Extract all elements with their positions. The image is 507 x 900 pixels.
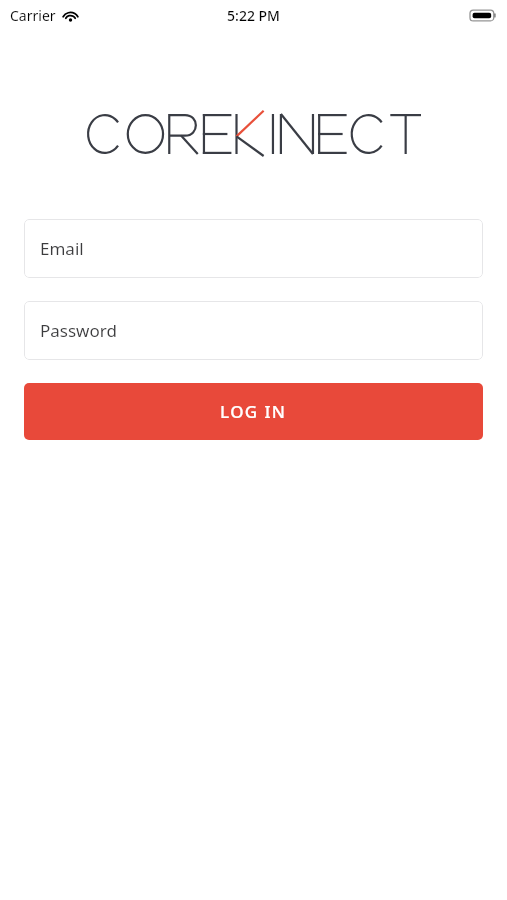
staticText: Password [40,319,117,342]
staticText: LOG IN [220,400,287,423]
other: Battery full [470,9,497,22]
staticText: 5:22 PM [227,6,280,25]
button[interactable]: Password [24,301,483,360]
staticText: Email [40,237,84,260]
staticText: Carrier [10,6,56,25]
button[interactable]: LOG IN [24,383,483,440]
other: Wi-Fi signal [62,9,79,22]
button[interactable]: Email [24,219,483,278]
